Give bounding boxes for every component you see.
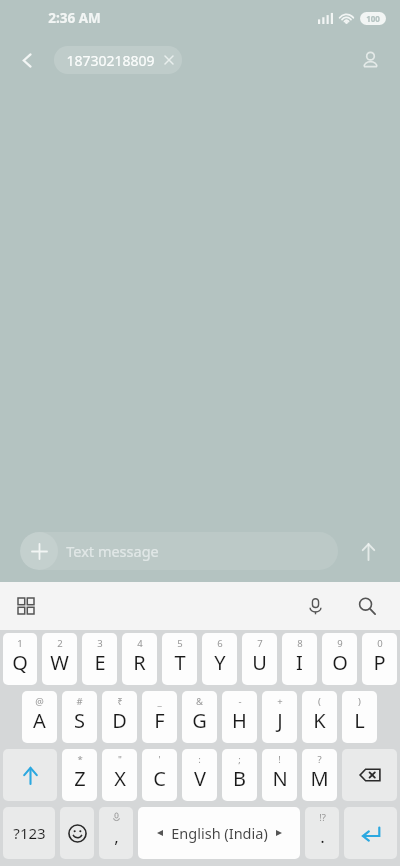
staticText: D xyxy=(112,707,127,734)
button[interactable]: ' xyxy=(142,749,177,801)
button[interactable]: ! xyxy=(262,749,297,801)
button[interactable]: 9 xyxy=(322,633,357,685)
button[interactable]: # xyxy=(62,691,97,743)
staticText: T xyxy=(174,649,186,676)
staticText: 8 xyxy=(297,637,303,650)
staticText: 1 xyxy=(17,637,23,650)
staticText: E xyxy=(94,649,106,676)
button[interactable]: Emoji xyxy=(60,807,94,859)
staticText: ' xyxy=(158,753,161,766)
staticText: 9 xyxy=(337,637,343,650)
button[interactable]: Shift xyxy=(3,749,57,801)
button[interactable]: English (India) xyxy=(138,807,300,859)
button[interactable]: 6 xyxy=(202,633,237,685)
staticText: L xyxy=(354,707,365,734)
staticText: ₹ xyxy=(117,695,123,708)
button[interactable]: & xyxy=(182,691,217,743)
button[interactable]: Enter xyxy=(344,807,397,859)
staticText: ? xyxy=(317,753,322,766)
staticText: !? xyxy=(319,811,326,824)
staticText: O xyxy=(332,649,348,676)
staticText: P xyxy=(373,649,386,676)
staticText: . xyxy=(320,825,325,848)
staticText: G xyxy=(192,707,207,734)
button[interactable]: Add attachment xyxy=(20,532,58,570)
button[interactable]: ) xyxy=(342,691,377,743)
button[interactable]: _ xyxy=(142,691,177,743)
button[interactable]: Backspace xyxy=(342,749,397,801)
staticText: " xyxy=(118,753,122,766)
staticText: - xyxy=(238,695,242,708)
staticText: 6 xyxy=(217,637,223,650)
staticText: + xyxy=(277,695,283,708)
button[interactable]: - xyxy=(222,691,257,743)
staticText: Q xyxy=(12,649,28,676)
staticText: X xyxy=(114,765,126,792)
button[interactable]: 1 xyxy=(3,633,37,685)
button[interactable]: Send xyxy=(348,531,388,571)
staticText: ) xyxy=(358,695,361,708)
button[interactable]: Contacts xyxy=(352,42,388,78)
staticText: Text message xyxy=(66,541,159,561)
staticText: ?123 xyxy=(13,823,46,843)
staticText: ; xyxy=(238,753,241,766)
staticText: M xyxy=(310,765,329,792)
staticText: @ xyxy=(35,695,44,708)
staticText: # xyxy=(76,695,83,708)
button[interactable]: + xyxy=(262,691,297,743)
button[interactable]: 5 xyxy=(162,633,197,685)
button[interactable]: Add attachment xyxy=(20,532,338,570)
button[interactable]: Back xyxy=(10,43,44,77)
button[interactable]: " xyxy=(102,749,137,801)
button[interactable]: !? xyxy=(305,807,339,859)
staticText: W xyxy=(50,649,69,676)
button[interactable]: ₹ xyxy=(102,691,137,743)
button[interactable]: ; xyxy=(222,749,257,801)
button[interactable]: * xyxy=(62,749,97,801)
staticText: 5 xyxy=(177,637,183,650)
staticText: 0 xyxy=(377,637,383,650)
button[interactable]: ?123 xyxy=(3,807,55,859)
button[interactable]: 8 xyxy=(282,633,317,685)
staticText: Z xyxy=(74,765,86,792)
staticText: 18730218809 xyxy=(66,51,155,70)
staticText: J xyxy=(277,707,283,734)
staticText: Y xyxy=(214,649,226,676)
staticText: * xyxy=(77,753,83,766)
staticText: English (India) xyxy=(171,823,268,843)
staticText: 3 xyxy=(97,637,103,650)
button[interactable]: 7 xyxy=(242,633,277,685)
staticText: C xyxy=(153,765,166,792)
button[interactable]: ? xyxy=(302,749,337,801)
staticText: N xyxy=(272,765,288,792)
button[interactable]: Voice input xyxy=(296,587,334,625)
staticText: S xyxy=(74,707,85,734)
button[interactable]: , xyxy=(99,807,133,859)
staticText: _ xyxy=(157,695,162,708)
staticText: ! xyxy=(278,753,281,766)
button[interactable]: 2 xyxy=(42,633,77,685)
staticText: 100 xyxy=(366,13,380,24)
staticText: ( xyxy=(318,695,321,708)
staticText: R xyxy=(133,649,146,676)
staticText: A xyxy=(33,707,46,734)
button[interactable]: @ xyxy=(22,691,57,743)
button[interactable]: : xyxy=(182,749,217,801)
staticText: H xyxy=(232,707,247,734)
staticText: B xyxy=(233,765,246,792)
staticText: : xyxy=(198,753,201,766)
button[interactable]: 18730218809 xyxy=(54,46,182,74)
staticText: 7 xyxy=(257,637,263,650)
staticText: I xyxy=(296,649,303,676)
button[interactable]: Keyboard layouts xyxy=(8,588,44,624)
button[interactable]: Search xyxy=(348,587,386,625)
button[interactable]: 4 xyxy=(122,633,157,685)
staticText: F xyxy=(154,707,165,734)
button[interactable]: 0 xyxy=(362,633,397,685)
staticText: U xyxy=(252,649,267,676)
button[interactable]: ( xyxy=(302,691,337,743)
button[interactable]: 3 xyxy=(82,633,117,685)
staticText: 2 xyxy=(57,637,63,650)
staticText: 4 xyxy=(137,637,143,650)
staticText: & xyxy=(196,695,203,708)
